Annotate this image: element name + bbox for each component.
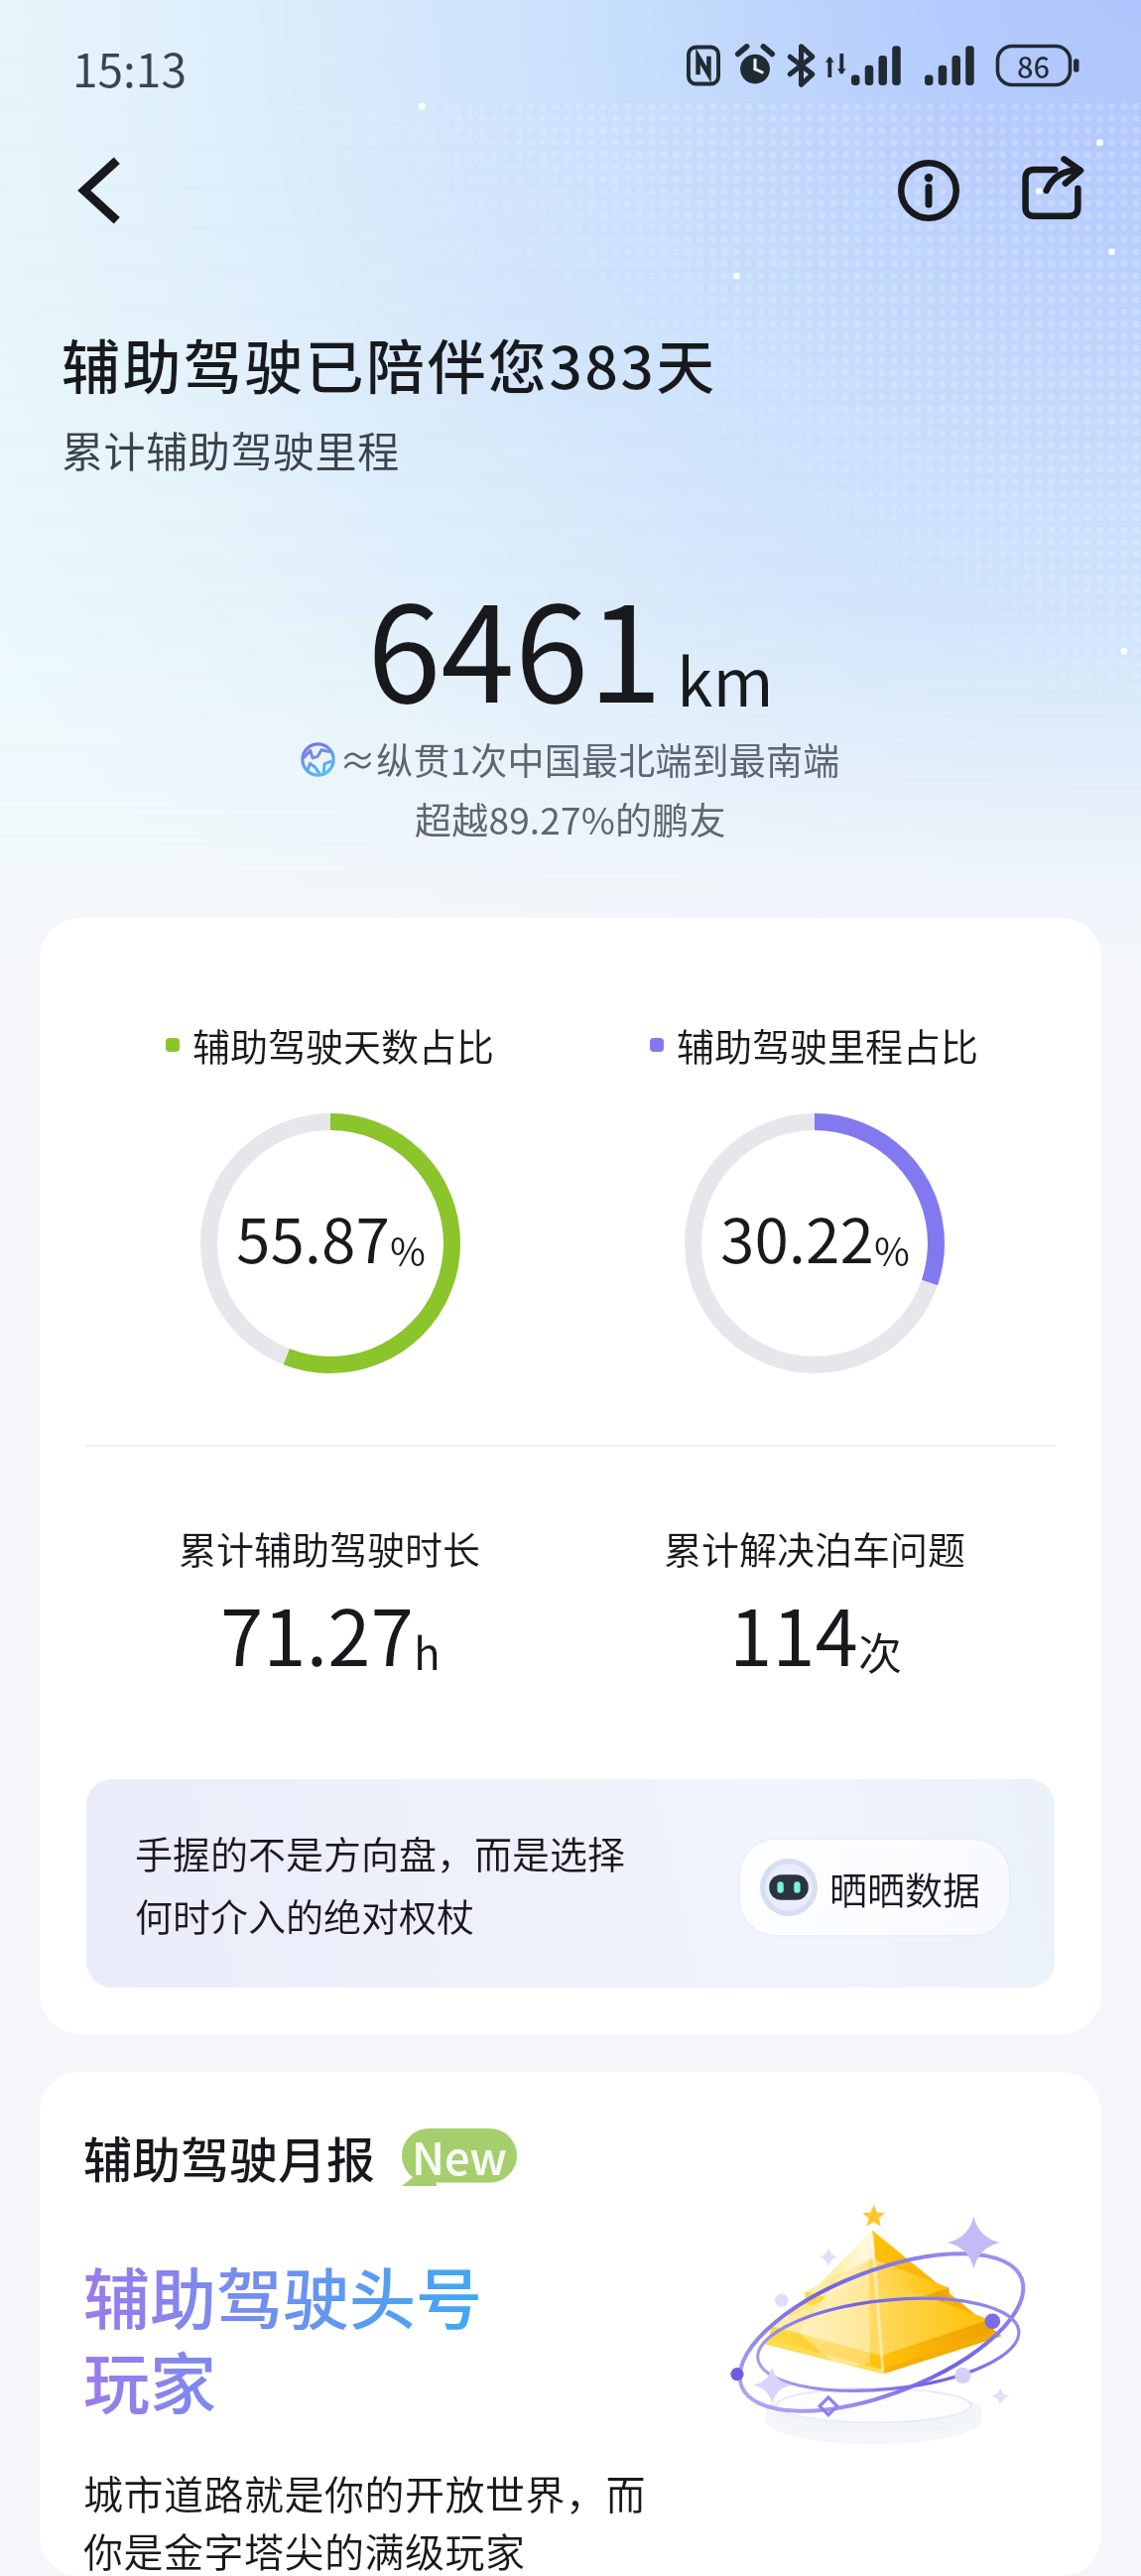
button[interactable]: 晒晒数据 [738, 1838, 1011, 1937]
staticText: 86 [1017, 45, 1051, 86]
staticText: km [677, 630, 774, 725]
staticText: 辅助驾驶天数占比 [192, 1017, 495, 1072]
staticText: 15:13 [72, 35, 187, 101]
staticText: 辅助驾驶里程占比 [677, 1017, 979, 1072]
staticText: 何时介入的绝对权杖 [135, 1887, 475, 1942]
staticText: 城市道路就是你的开放世界，而 [83, 2464, 646, 2521]
staticText: 114 [729, 1577, 858, 1689]
staticText: 55.87 [236, 1192, 390, 1281]
staticText: 6461 [367, 549, 663, 741]
staticText: 你是金字塔尖的满级玩家 [83, 2521, 526, 2576]
staticText: 30.22 [720, 1192, 874, 1281]
staticText: 次 [858, 1619, 902, 1683]
staticText: 辅助驾驶头号 玩家 [83, 2247, 482, 2427]
staticText: 累计辅助驾驶里程 [62, 419, 400, 479]
staticText: 辅助驾驶月报 [83, 2122, 376, 2192]
button[interactable]: Back [52, 143, 147, 238]
button[interactable]: Info [881, 143, 976, 238]
staticText: 晒晒数据 [829, 1861, 981, 1915]
button[interactable]: 辅助驾驶月报 [40, 2072, 1101, 2576]
staticText: ≈纵贯1次中国最北端到最南端 [339, 732, 840, 786]
staticText: 辅助驾驶已陪伴您383天 [62, 322, 717, 406]
staticText: % [390, 1222, 426, 1277]
staticText: 手握的不是方向盘，而是选择 [135, 1825, 626, 1879]
staticText: 71.27 [220, 1577, 414, 1689]
staticText: % [874, 1222, 910, 1277]
staticText: h [414, 1619, 441, 1683]
staticText: 累计辅助驾驶时长 [179, 1520, 481, 1575]
staticText: New [412, 2124, 507, 2188]
button[interactable]: 手握的不是方向盘，而是选择 [86, 1779, 1055, 1988]
staticText: 超越89.27%的鹏友 [415, 792, 726, 845]
staticText: 累计解决泊车问题 [664, 1520, 966, 1575]
button[interactable]: Share [1002, 143, 1097, 238]
